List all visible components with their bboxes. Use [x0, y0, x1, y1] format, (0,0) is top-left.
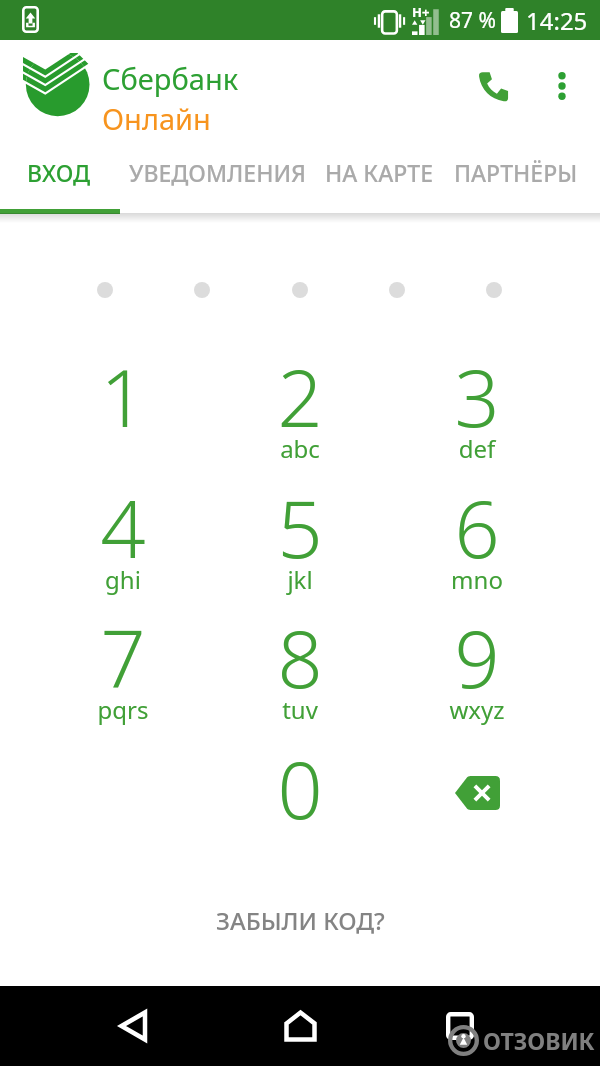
button[interactable]: Recents — [420, 986, 500, 1066]
staticText: 3 — [397, 343, 557, 451]
staticText: УВЕДОМЛЕНИЯ — [129, 157, 307, 188]
button[interactable]: ВХОД — [0, 140, 118, 205]
button[interactable]: 6 — [397, 463, 557, 589]
staticText: ЗАБЫЛИ КОД? — [216, 904, 385, 937]
button[interactable]: 8 — [220, 593, 380, 719]
button[interactable]: 4 — [43, 463, 203, 589]
button[interactable]: 7 — [43, 593, 203, 719]
staticText: jkl — [220, 563, 380, 596]
staticText: H+ — [412, 3, 430, 21]
staticText: 14:25 — [526, 4, 588, 37]
button[interactable]: 1 — [43, 332, 203, 458]
staticText: pqrs — [43, 693, 203, 726]
button[interactable]: Call — [461, 54, 525, 118]
button[interactable]: Backspace — [397, 724, 557, 850]
staticText: 2 — [220, 343, 380, 451]
staticText: wxyz — [397, 693, 557, 726]
staticText: mno — [397, 563, 557, 596]
staticText: ВХОД — [27, 157, 91, 188]
staticText: ОТЗОВИК — [483, 1025, 595, 1056]
button[interactable]: More options — [536, 60, 588, 112]
staticText: def — [397, 432, 557, 465]
button[interactable]: 2 — [220, 332, 380, 458]
staticText: Сбербанк — [102, 59, 239, 98]
button[interactable]: ЗАБЫЛИ КОД? — [0, 895, 600, 945]
staticText: 9 — [397, 604, 557, 712]
staticText: abc — [220, 432, 380, 465]
staticText: 6 — [397, 474, 557, 582]
staticText: 8 — [220, 604, 380, 712]
button[interactable]: ПАРТНЁРЫ — [439, 140, 593, 205]
staticText: Онлайн — [102, 99, 211, 138]
staticText: 0 — [220, 735, 380, 843]
staticText: 5 — [220, 474, 380, 582]
button[interactable]: 0 — [220, 724, 380, 850]
staticText: НА КАРТЕ — [325, 157, 433, 188]
staticText: 1 — [43, 343, 203, 451]
staticText: 87 % — [449, 6, 496, 35]
button[interactable]: Home — [260, 986, 340, 1066]
staticText: tuv — [220, 693, 380, 726]
staticText: ПАРТНЁРЫ — [454, 157, 578, 188]
staticText: 4 — [43, 474, 203, 582]
button[interactable]: 9 — [397, 593, 557, 719]
button[interactable]: НА КАРТЕ — [316, 140, 441, 205]
button[interactable]: 5 — [220, 463, 380, 589]
staticText: ghi — [43, 563, 203, 596]
button[interactable]: Back — [93, 986, 173, 1066]
button[interactable]: 3 — [397, 332, 557, 458]
button[interactable]: УВЕДОМЛЕНИЯ — [118, 140, 318, 205]
staticText: 7 — [43, 604, 203, 712]
